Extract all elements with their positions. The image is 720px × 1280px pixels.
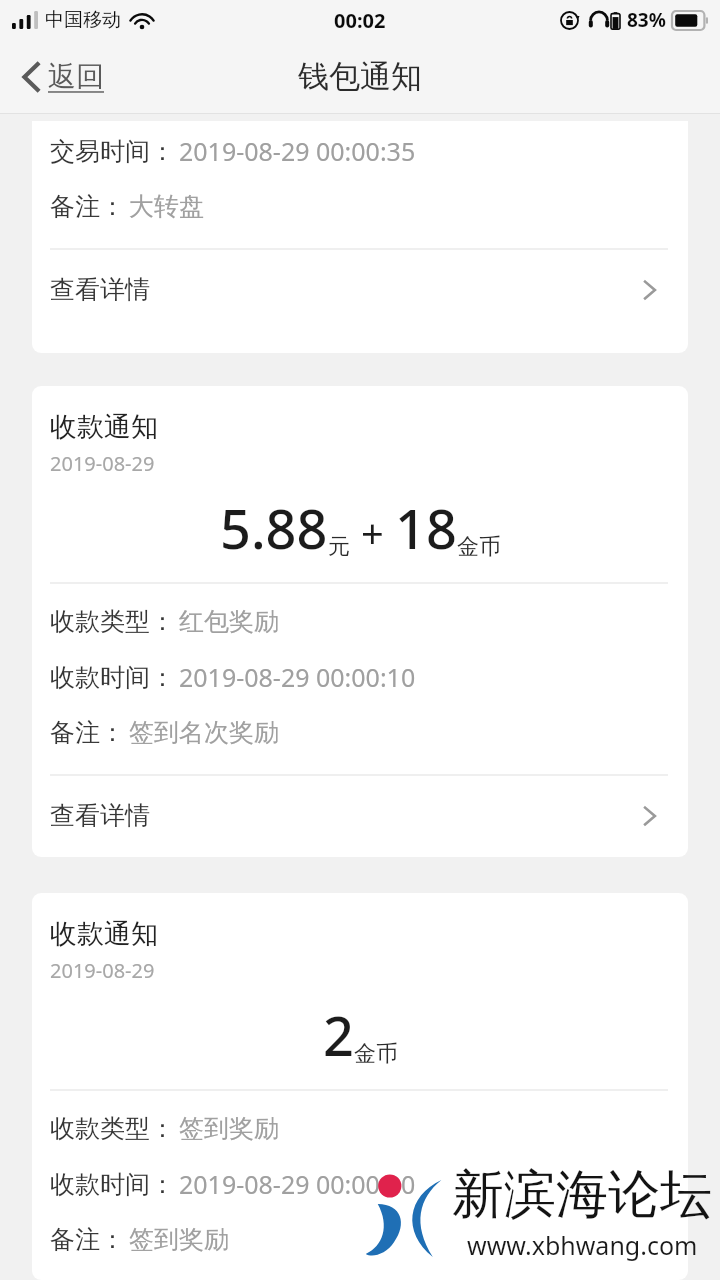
staticText: www.xbhwang.com xyxy=(467,1228,698,1262)
staticText: 签到名次奖励 xyxy=(129,717,279,748)
staticText: 2019-08-29 xyxy=(50,450,155,477)
staticText: 钱包通知 xyxy=(298,57,422,96)
staticText: 签到奖励 xyxy=(179,1113,279,1144)
button[interactable]: 返回 xyxy=(0,40,120,113)
staticText: 签到奖励 xyxy=(129,1224,229,1255)
staticText: 2019-08-29 00:00:00 xyxy=(179,1167,416,1201)
staticText: 元 xyxy=(328,533,350,561)
staticText: 收款通知 xyxy=(50,410,158,444)
staticText: 备注： xyxy=(50,191,125,222)
staticText: 2019-08-29 00:00:10 xyxy=(179,660,416,694)
staticText: 收款时间： xyxy=(50,662,175,693)
button[interactable]: 查看详情 xyxy=(32,798,688,857)
staticText: 查看详情 xyxy=(50,274,150,305)
staticText: 交易时间： xyxy=(50,136,175,167)
staticText: + xyxy=(361,505,384,559)
staticText: 收款时间： xyxy=(50,1169,175,1200)
staticText: 2 xyxy=(323,998,354,1072)
staticText: 金币 xyxy=(354,1040,398,1068)
staticText: 新滨海论坛 xyxy=(452,1162,712,1228)
staticText: 中国移动 xyxy=(45,8,121,32)
other: 查看详情 xyxy=(636,276,664,304)
staticText: 2019-08-29 00:00:35 xyxy=(179,134,416,168)
staticText: 收款类型： xyxy=(50,1113,175,1144)
staticText: 查看详情 xyxy=(50,800,150,831)
staticText: 金币 xyxy=(457,533,501,561)
staticText: 返回 xyxy=(48,59,104,94)
staticText: 5.88 xyxy=(220,491,328,565)
staticText: 收款类型： xyxy=(50,606,175,637)
staticText: 备注： xyxy=(50,1224,125,1255)
staticText: 收款通知 xyxy=(50,917,158,951)
staticText: 83% xyxy=(627,7,666,33)
staticText: 2019-08-29 xyxy=(50,957,155,984)
staticText: 18 xyxy=(395,491,457,565)
staticText: 红包奖励 xyxy=(179,606,279,637)
button[interactable]: 查看详情 xyxy=(32,272,688,331)
staticText: 大转盘 xyxy=(129,191,204,222)
staticText: 备注： xyxy=(50,717,125,748)
staticText: 00:02 xyxy=(334,7,386,34)
other: 查看详情 xyxy=(636,802,664,830)
